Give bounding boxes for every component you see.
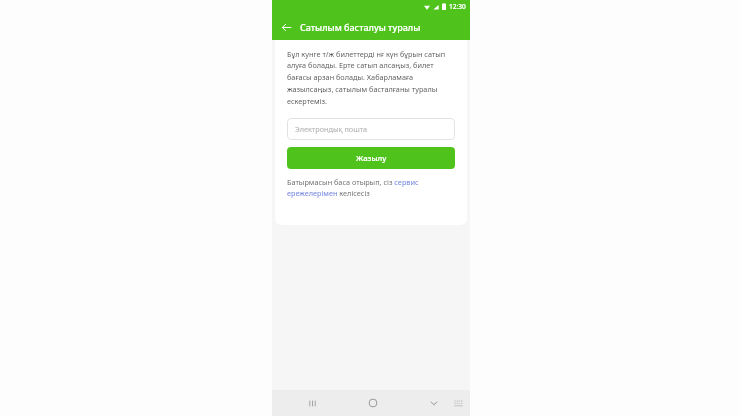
- button[interactable]: Keyboard: [450, 395, 466, 411]
- staticText: 12:30: [449, 2, 466, 11]
- staticText: Бұл кунге т/ж билеттерді нғ күн бұрын са…: [287, 49, 455, 106]
- button[interactable]: Home: [363, 393, 383, 413]
- button[interactable]: Батырмасын баса отырып, сіз сервис ереже…: [287, 177, 455, 198]
- button[interactable]: Back: [278, 19, 294, 35]
- staticText: Жазылу: [356, 153, 387, 164]
- staticText: Сатылым басталуы туралы: [300, 21, 421, 33]
- button[interactable]: Электрондық пошта: [287, 118, 455, 140]
- staticText: Электрондық пошта: [295, 124, 368, 134]
- button[interactable]: Back: [424, 393, 444, 413]
- button[interactable]: Жазылу: [287, 147, 455, 169]
- button[interactable]: Recent apps: [302, 393, 322, 413]
